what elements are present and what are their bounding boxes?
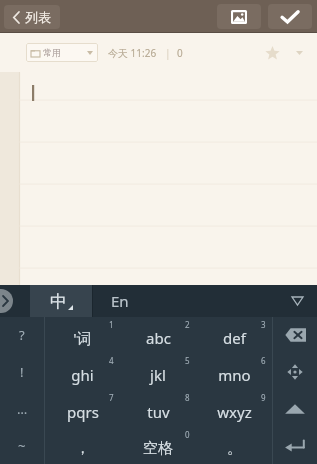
staticText: 6 — [261, 355, 266, 366]
staticText: pqrs — [67, 402, 99, 422]
staticText: 空格 — [143, 439, 173, 458]
button[interactable]: 0 — [120, 427, 196, 464]
staticText: 5 — [185, 355, 190, 366]
staticText: 0 — [185, 429, 190, 440]
button[interactable]: Backspace — [273, 317, 317, 353]
button[interactable]: 5 — [120, 353, 196, 390]
button[interactable]: … — [0, 390, 44, 427]
button[interactable]: 常用 — [26, 43, 98, 62]
staticText: 列表 — [25, 9, 51, 25]
button[interactable]: 6 — [196, 353, 272, 390]
button[interactable]: Favourite — [259, 40, 285, 66]
button[interactable]: 中 — [30, 285, 92, 317]
button[interactable]: More options — [289, 43, 309, 63]
staticText: jkl — [150, 365, 166, 385]
staticText: abc — [146, 328, 171, 348]
button[interactable]: Insert picture — [217, 4, 261, 29]
staticText: 2 — [185, 319, 190, 330]
staticText: ， — [75, 439, 90, 458]
button[interactable]: ? — [0, 317, 44, 353]
button[interactable]: Done — [268, 4, 312, 29]
button[interactable]: ! — [0, 353, 44, 390]
button[interactable]: 。 — [196, 427, 272, 464]
staticText: def — [223, 328, 246, 348]
button[interactable]: Shift — [273, 390, 317, 427]
staticText: En — [111, 291, 129, 311]
staticText: 4 — [109, 355, 114, 366]
staticText: 3 — [261, 319, 266, 330]
button[interactable]: 3 — [196, 317, 272, 353]
staticText: wxyz — [217, 402, 252, 422]
button[interactable]: 列表 — [4, 5, 60, 29]
staticText: '词 — [73, 328, 92, 348]
staticText: 7 — [109, 392, 114, 403]
staticText: ~ — [18, 437, 26, 455]
button[interactable]: Expand toolbar — [0, 289, 13, 313]
staticText: 中 — [50, 291, 67, 312]
staticText: | — [165, 46, 171, 60]
button[interactable]: En — [93, 285, 277, 317]
staticText: tuv — [147, 402, 170, 422]
button[interactable]: Hide keyboard — [277, 285, 317, 317]
staticText: mno — [218, 365, 251, 385]
staticText: ghi — [71, 365, 94, 385]
button[interactable]: 9 — [196, 390, 272, 427]
button[interactable]: 1 — [45, 317, 120, 353]
button[interactable]: Move cursor — [273, 353, 317, 390]
staticText: 。 — [227, 439, 242, 458]
staticText: … — [17, 400, 28, 418]
staticText: ! — [20, 363, 24, 381]
button[interactable]: 2 — [120, 317, 196, 353]
button[interactable]: ~ — [0, 427, 44, 464]
staticText: 今天 11:26 — [108, 46, 157, 60]
staticText: 0 — [177, 46, 183, 60]
button[interactable]: 8 — [120, 390, 196, 427]
staticText: 1 — [109, 319, 114, 330]
staticText: 8 — [185, 392, 190, 403]
button[interactable]: Enter — [273, 427, 317, 464]
button[interactable]: 7 — [45, 390, 120, 427]
staticText: 常用 — [43, 47, 61, 58]
staticText: ? — [19, 326, 25, 344]
staticText: 9 — [261, 392, 266, 403]
button[interactable]: 4 — [45, 353, 120, 390]
button[interactable]: ， — [45, 427, 120, 464]
